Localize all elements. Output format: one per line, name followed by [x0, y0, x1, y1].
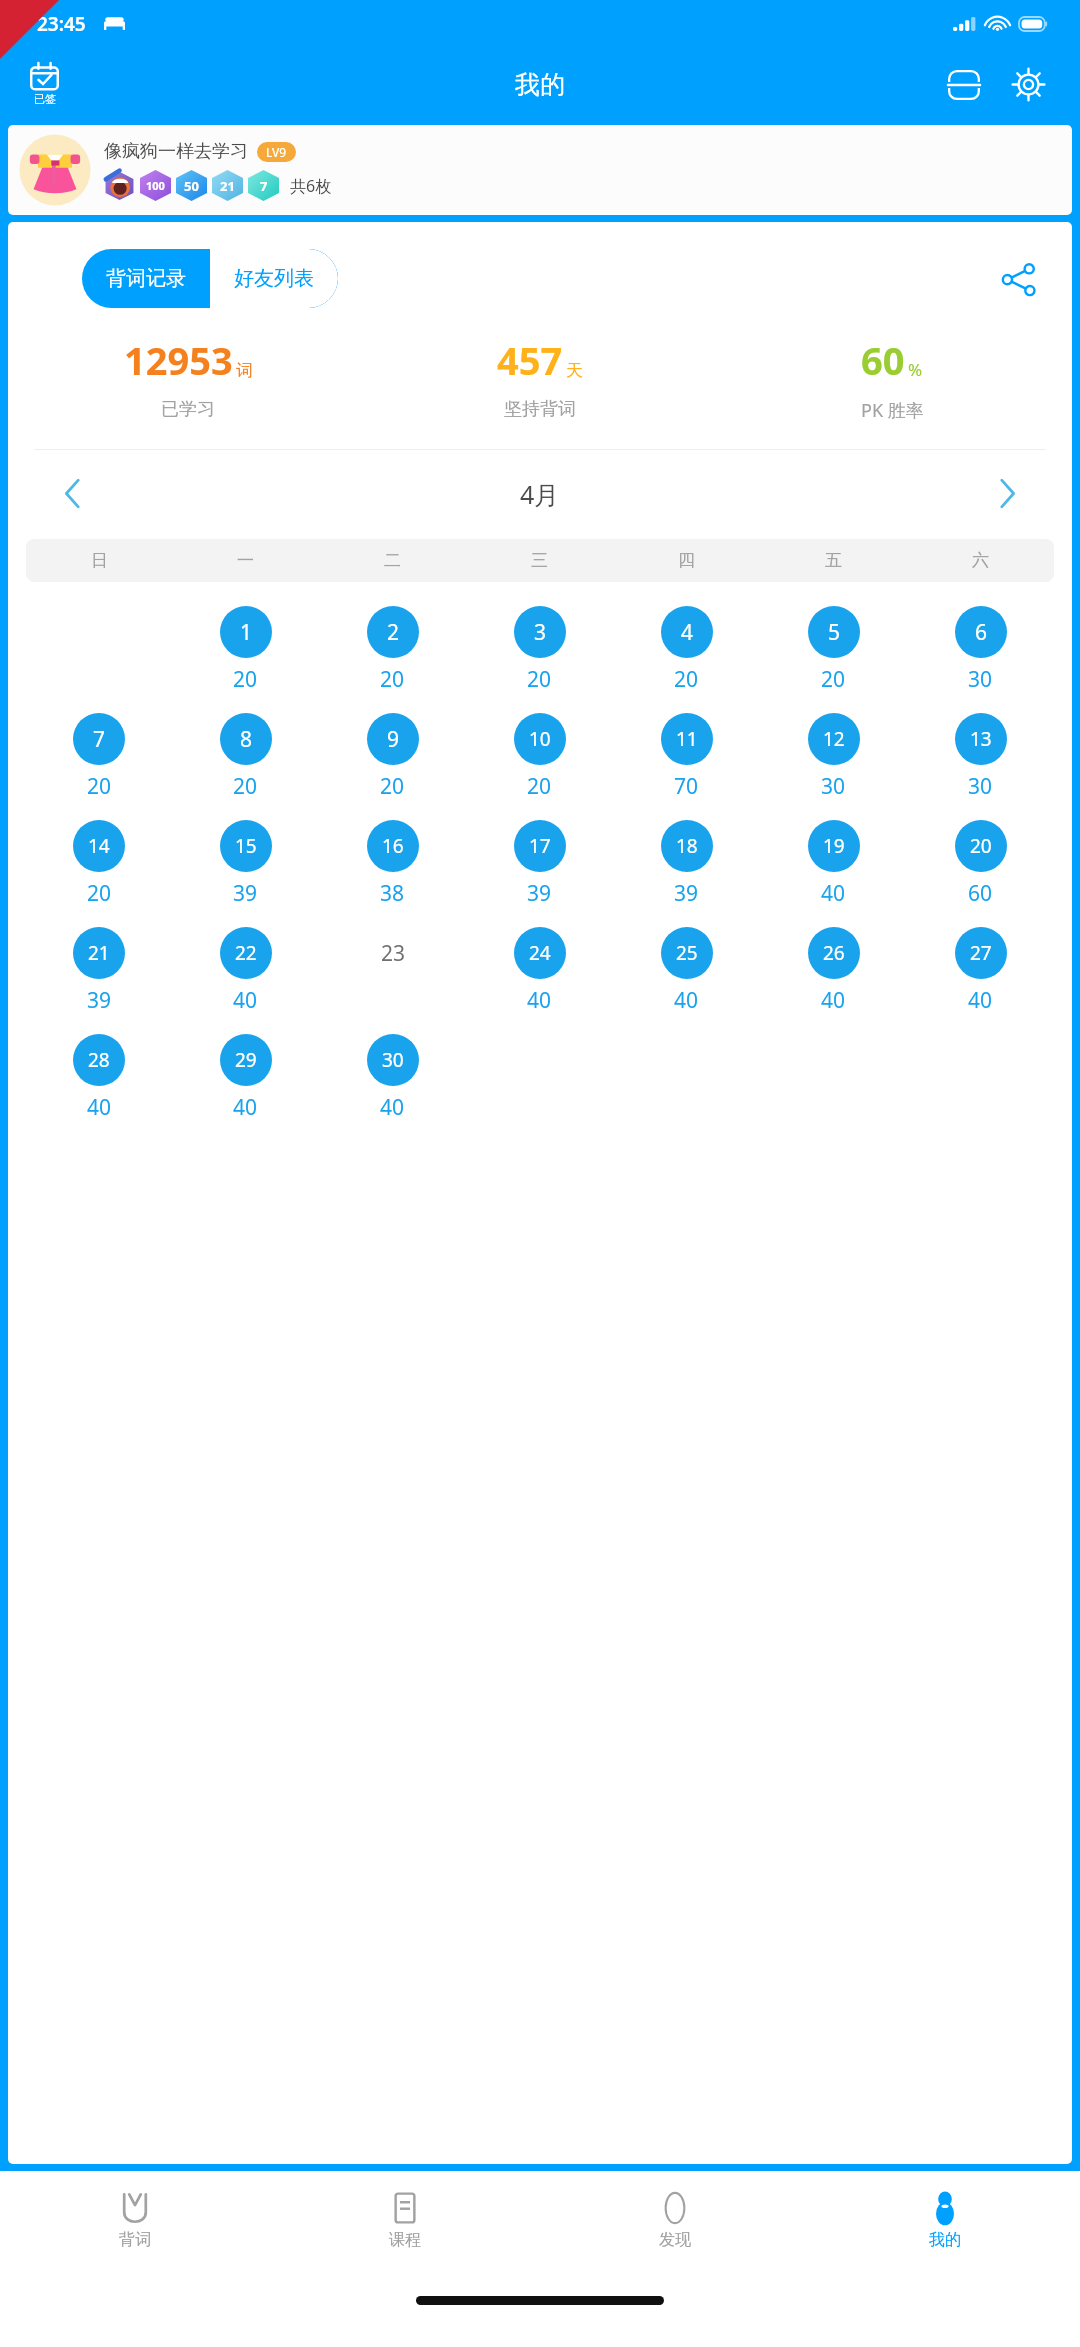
button[interactable]: 6: [955, 606, 1007, 658]
button[interactable]: 19: [808, 820, 860, 872]
button[interactable]: 背词: [0, 2171, 270, 2269]
staticText: 我的: [929, 2230, 961, 2250]
button[interactable]: 10: [514, 713, 566, 765]
staticText: 16: [382, 833, 404, 859]
button[interactable]: 3: [514, 606, 566, 658]
button[interactable]: 5: [808, 606, 860, 658]
staticText: 40: [233, 1093, 258, 1122]
staticText: 28: [88, 1047, 110, 1073]
staticText: PK 胜率: [861, 398, 924, 423]
staticText: 背词记录: [106, 266, 186, 291]
button[interactable]: 好友列表: [210, 249, 338, 308]
button[interactable]: Scan: [939, 61, 989, 109]
button[interactable]: 21: [73, 927, 125, 979]
staticText: 39: [674, 879, 699, 908]
staticText: 已签: [34, 92, 56, 106]
button[interactable]: 2: [367, 606, 419, 658]
staticText: 29: [235, 1047, 257, 1073]
staticText: 好友列表: [234, 266, 314, 291]
button[interactable]: 16: [367, 820, 419, 872]
staticText: %: [908, 358, 923, 381]
button[interactable]: 课程: [270, 2171, 540, 2269]
staticText: 五: [825, 550, 842, 571]
button[interactable]: 13: [955, 713, 1007, 765]
button[interactable]: 20: [955, 820, 1007, 872]
staticText: 天: [566, 360, 583, 381]
staticText: 30: [968, 772, 993, 801]
staticText: 四: [678, 550, 695, 571]
staticText: 12: [823, 726, 845, 752]
button[interactable]: 17: [514, 820, 566, 872]
staticText: 13: [970, 726, 992, 752]
staticText: 23:45: [37, 11, 86, 37]
button[interactable]: 28: [73, 1034, 125, 1086]
button[interactable]: 11: [661, 713, 713, 765]
button[interactable]: 22: [220, 927, 272, 979]
staticText: 2: [387, 618, 400, 647]
staticText: 30: [821, 772, 846, 801]
staticText: 二: [384, 550, 401, 571]
button[interactable]: Settings: [1003, 59, 1054, 110]
staticText: 12953: [124, 334, 233, 386]
staticText: 23: [381, 939, 406, 968]
button[interactable]: 像疯狗一样去学习: [8, 125, 1072, 215]
button[interactable]: 我的: [810, 2171, 1080, 2269]
button[interactable]: Next month: [989, 468, 1026, 519]
staticText: 3: [534, 618, 547, 647]
button[interactable]: 18: [661, 820, 713, 872]
staticText: 26: [823, 940, 845, 966]
staticText: 40: [380, 1093, 405, 1122]
staticText: 20: [970, 833, 992, 859]
staticText: 60: [861, 334, 905, 386]
button[interactable]: 25: [661, 927, 713, 979]
button[interactable]: 29: [220, 1034, 272, 1086]
button[interactable]: 14: [73, 820, 125, 872]
button[interactable]: 26: [808, 927, 860, 979]
staticText: 30: [968, 665, 993, 694]
staticText: 20: [87, 879, 112, 908]
staticText: 70: [674, 772, 699, 801]
staticText: 25: [676, 940, 698, 966]
staticText: 一: [237, 550, 254, 571]
staticText: 20: [380, 665, 405, 694]
staticText: 6: [975, 618, 988, 647]
button[interactable]: 12: [808, 713, 860, 765]
staticText: 38: [380, 879, 405, 908]
button[interactable]: 1: [220, 606, 272, 658]
staticText: LV9: [266, 144, 287, 160]
button[interactable]: 15: [220, 820, 272, 872]
button[interactable]: 4: [661, 606, 713, 658]
staticText: 4月: [520, 477, 560, 511]
button[interactable]: 8: [220, 713, 272, 765]
staticText: 30: [382, 1047, 404, 1073]
staticText: 457: [497, 334, 563, 386]
button[interactable]: 27: [955, 927, 1007, 979]
button[interactable]: 发现: [540, 2171, 810, 2269]
staticText: 课程: [389, 2230, 421, 2250]
staticText: 背词: [119, 2230, 151, 2250]
staticText: 坚持背词: [504, 398, 576, 421]
button[interactable]: 30: [367, 1034, 419, 1086]
staticText: 20: [674, 665, 699, 694]
staticText: 50: [184, 177, 199, 195]
button[interactable]: 背词记录: [82, 249, 210, 308]
staticText: 11: [676, 726, 698, 752]
staticText: 六: [972, 550, 989, 571]
button[interactable]: 7: [73, 713, 125, 765]
staticText: 日: [91, 550, 108, 571]
button[interactable]: Share: [992, 252, 1046, 306]
button[interactable]: 24: [514, 927, 566, 979]
staticText: 100: [146, 178, 165, 193]
button[interactable]: Previous month: [54, 468, 91, 519]
staticText: 60: [968, 879, 993, 908]
staticText: 40: [87, 1093, 112, 1122]
button[interactable]: 9: [367, 713, 419, 765]
button[interactable]: 已签: [26, 59, 63, 110]
staticText: 27: [970, 940, 992, 966]
staticText: 14: [88, 833, 110, 859]
staticText: 24: [529, 940, 551, 966]
staticText: 40: [674, 986, 699, 1015]
staticText: 20: [527, 665, 552, 694]
staticText: 1: [240, 618, 253, 647]
button[interactable]: 23: [367, 927, 419, 979]
